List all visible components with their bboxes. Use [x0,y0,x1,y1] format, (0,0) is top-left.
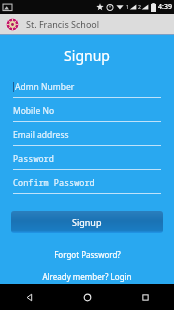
staticText: St. Francis School [26,18,100,30]
button[interactable]: Email address [13,129,161,153]
staticText: Admn Number [15,81,75,93]
staticText: Mobile No [13,105,55,117]
staticText: 2 [138,4,141,11]
staticText: Email address [13,129,69,141]
staticText: Signup [72,216,102,228]
button[interactable]: Password [13,153,161,177]
button[interactable]: Recent apps [116,284,174,310]
button[interactable]: Already member? Login [0,271,174,282]
staticText: Password [13,153,54,165]
button[interactable]: Admn Number [13,81,161,105]
staticText: 4:39 [158,2,172,12]
staticText: Signup [0,46,174,65]
button[interactable]: Mobile No [13,105,161,129]
button[interactable]: St. Francis School [0,14,174,34]
button[interactable]: Confirm Password [13,177,161,201]
staticText: 1 [126,4,129,11]
button[interactable]: Back [0,284,58,310]
staticText: Forgot Password? [54,249,121,260]
button[interactable]: Home [58,284,116,310]
button[interactable]: Forgot Password? [0,249,174,260]
button[interactable]: Signup [11,211,163,233]
staticText: Already member? Login [42,271,132,282]
staticText: Confirm Password [13,177,95,189]
